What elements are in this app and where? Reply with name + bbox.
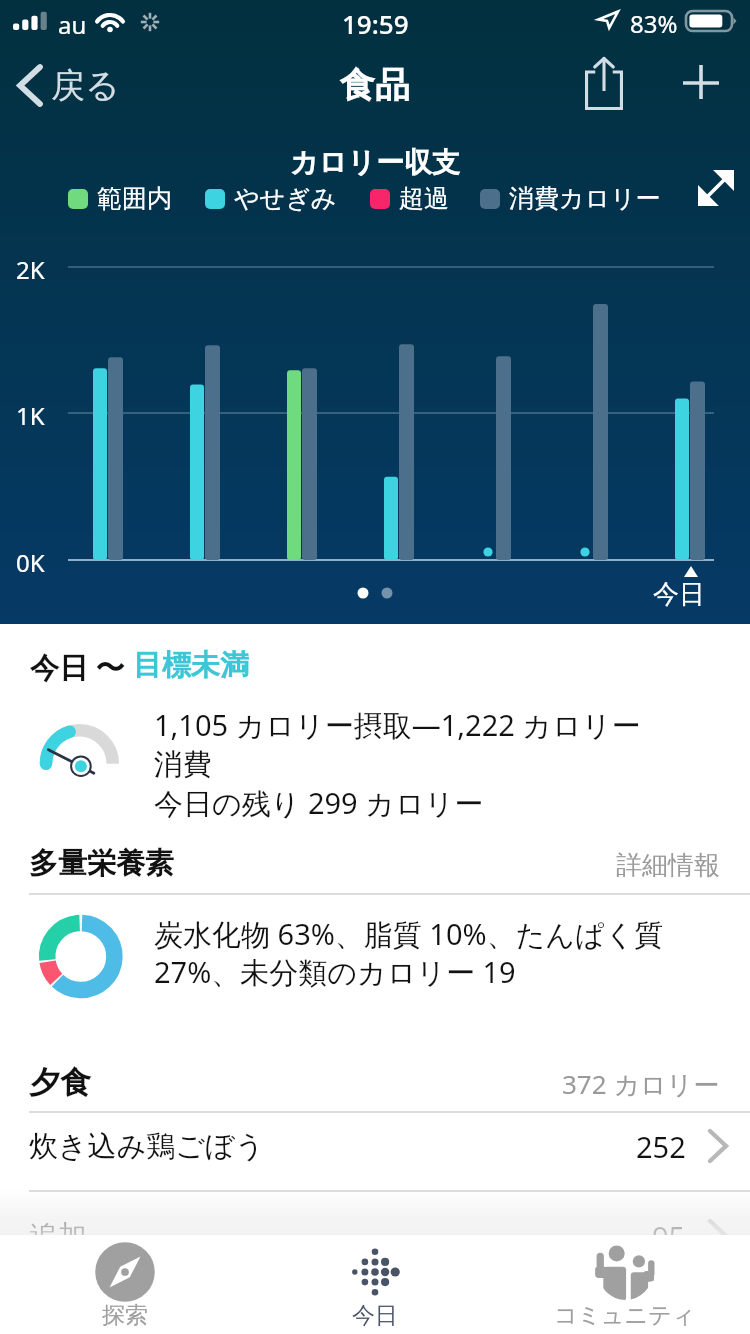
button[interactable]: 追加 [0,1192,750,1235]
staticText: 今日 〜 [30,647,133,687]
staticText: 炊き込み鶏ごぼう [29,1128,265,1165]
button[interactable]: 共有 [571,43,637,105]
staticText: 今日 [653,578,705,611]
staticText: カロリー収支 [290,145,460,180]
button[interactable]: 多量栄養素 [0,840,750,893]
button[interactable]: 今日 [250,1235,500,1334]
button[interactable]: 戻る [0,58,130,113]
staticText: au [58,8,87,41]
staticText: 炭水化物 63%、脂質 10%、たんぱく質 27%、未分類のカロリー 19 [154,914,674,992]
staticText: 83% [630,7,678,40]
staticText: 範囲内 [97,183,172,214]
button[interactable]: 1,105 カロリー摂取—1,222 カロリー消費 [0,705,750,823]
staticText: 探索 [102,1301,148,1330]
staticText: 0K [16,546,45,579]
staticText: 目標未満 [133,647,249,684]
staticText: 1,105 カロリー摂取—1,222 カロリー消費 [154,705,646,783]
staticText: 戻る [51,64,120,107]
staticText: 95 [652,1217,686,1235]
button[interactable]: 全画面表示 [688,160,744,216]
button[interactable]: 炊き込み鶏ごぼう [0,1102,750,1190]
staticText: 今日の残り 299 カロリー [154,783,484,823]
staticText: 超過 [399,183,449,214]
staticText: 252 [636,1127,686,1166]
staticText: 詳細情報 [616,849,720,882]
button[interactable]: 今日 〜 [0,645,279,689]
button[interactable]: コミュニティ [500,1235,750,1334]
staticText: 消費カロリー [509,183,661,214]
button[interactable]: 追加 [669,51,733,113]
staticText: コミュニティ [554,1301,696,1330]
staticText: 19:59 [342,6,409,41]
staticText: 多量栄養素 [29,845,174,882]
staticText: 夕食 [29,1063,91,1102]
button[interactable]: 炭水化物 63%、脂質 10%、たんぱく質 27%、未分類のカロリー 19 [0,908,750,1010]
staticText: やせぎみ [234,183,337,214]
staticText: 食品 [340,63,410,107]
staticText: 1K [16,399,45,432]
button[interactable]: 夕食 [0,1055,750,1111]
staticText: 2K [16,253,45,286]
staticText: 今日 [352,1301,398,1330]
button[interactable]: 探索 [0,1235,250,1334]
staticText: 追加 [29,1218,87,1235]
staticText: 372 カロリー [562,1066,720,1102]
